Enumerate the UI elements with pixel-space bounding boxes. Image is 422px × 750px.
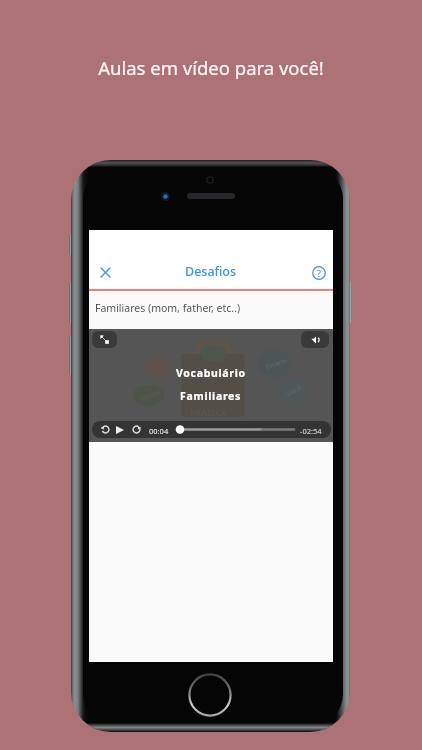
button[interactable]: Close: [95, 262, 116, 283]
staticText: -02:54: [300, 426, 322, 436]
staticText: ?: [317, 267, 321, 279]
staticText: FALA: [285, 382, 304, 398]
button[interactable]: Forward 10 seconds: [128, 423, 144, 436]
button[interactable]: Play: [112, 423, 128, 436]
staticText: ESCRITA: [265, 357, 288, 370]
staticText: Aulas em vídeo para você!: [0, 55, 422, 80]
staticText: Familiares: [180, 389, 242, 403]
staticText: Desafios: [185, 263, 237, 280]
button[interactable]: Fullscreen: [92, 331, 117, 348]
staticText: 00:04: [149, 426, 169, 436]
staticText: PRÁTICA: [190, 407, 228, 418]
staticText: Vocabulário: [176, 366, 246, 380]
button[interactable]: Mute: [301, 331, 329, 348]
staticText: Familiares (mom, father, etc..): [95, 301, 241, 315]
button[interactable]: Help: [308, 262, 329, 283]
button[interactable]: Rewind 10 seconds: [97, 423, 113, 436]
